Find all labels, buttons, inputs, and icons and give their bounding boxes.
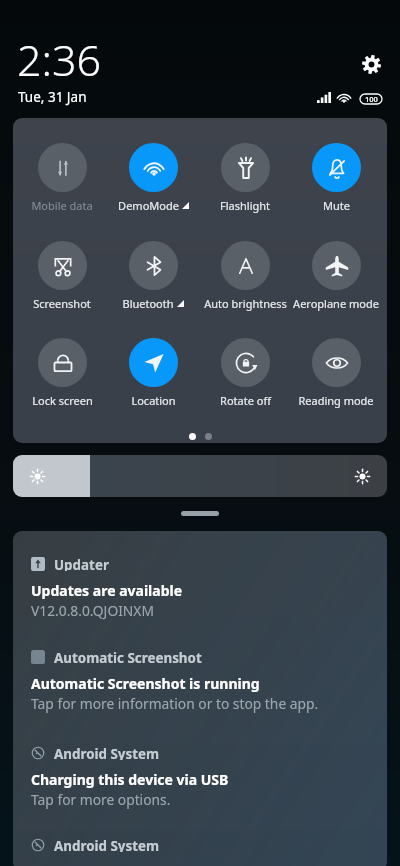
staticText: 2:36 <box>17 30 102 89</box>
staticText: Auto brightness <box>204 296 287 311</box>
staticText: Updater <box>54 556 109 571</box>
staticText: Screenshot <box>33 296 91 311</box>
staticText: 100 <box>365 94 378 104</box>
staticText: V12.0.8.0.QJOINXM <box>31 601 154 620</box>
staticText: Reading mode <box>298 393 374 408</box>
staticText: Mobile data <box>31 198 93 213</box>
staticText: Automatic Screenshot is running <box>31 674 260 693</box>
staticText: Bluetooth <box>122 296 174 311</box>
staticText: Tap for more options. <box>31 790 171 809</box>
button[interactable]: Bluetooth <box>107 241 199 311</box>
button[interactable]: Aeroplane mode <box>290 241 382 311</box>
button[interactable]: Android System <box>31 837 373 852</box>
button[interactable]: Updater <box>31 556 373 620</box>
staticText: Lock screen <box>32 393 93 408</box>
button[interactable]: Location <box>107 338 199 408</box>
staticText: Location <box>131 393 176 408</box>
staticText: Flashlight <box>220 198 270 213</box>
button[interactable]: Auto brightness <box>199 241 291 311</box>
staticText: Aeroplane mode <box>293 296 379 311</box>
staticText: Updates are available <box>31 581 183 600</box>
button[interactable]: Mobile data <box>16 143 108 213</box>
staticText: Mute <box>323 198 350 213</box>
staticText: Android System <box>54 837 160 852</box>
staticText: Charging this device via USB <box>31 770 229 789</box>
button[interactable]: Lock screen <box>16 338 108 408</box>
staticText: Automatic Screenshot <box>54 649 202 664</box>
button[interactable]: Screenshot <box>16 241 108 311</box>
staticText: DemoMode <box>118 198 179 213</box>
button[interactable]: Settings <box>362 55 381 74</box>
button[interactable]: Android System <box>31 745 373 809</box>
button[interactable]: Flashlight <box>199 143 291 213</box>
staticText: Android System <box>54 745 160 760</box>
button[interactable]: Rotate off <box>199 338 291 408</box>
staticText: Rotate off <box>220 393 271 408</box>
button[interactable]: DemoMode <box>107 143 199 213</box>
button[interactable]: Reading mode <box>290 338 382 408</box>
button[interactable]: Mute <box>290 143 382 213</box>
button[interactable]: Automatic Screenshot <box>31 649 373 713</box>
staticText: Tue, 31 Jan <box>18 88 87 106</box>
button[interactable]: Brightness <box>13 455 387 497</box>
staticText: Tap for more information or to stop the … <box>31 694 319 713</box>
